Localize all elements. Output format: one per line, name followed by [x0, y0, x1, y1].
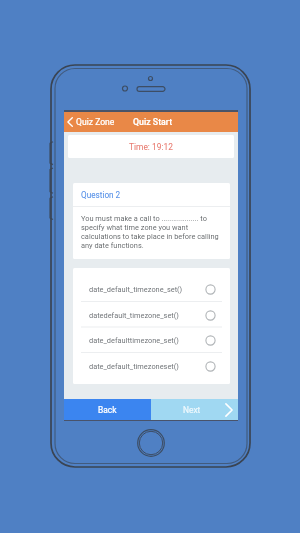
button[interactable]: Time: 19:12 — [68, 135, 234, 158]
staticText: datedefault_timezone_set() — [89, 311, 179, 320]
button[interactable]: datedefault_timezone_set() — [73, 303, 230, 328]
staticText: Quiz Start — [133, 117, 173, 127]
button[interactable]: date_defaulttimezone_set() — [73, 328, 230, 353]
staticText: Next — [183, 405, 201, 415]
button[interactable]: Back — [64, 399, 151, 420]
staticText: Back — [98, 405, 117, 415]
other: Next question — [225, 403, 233, 417]
staticText: Quiz Zone — [76, 117, 115, 127]
staticText: Question 2 — [81, 190, 121, 200]
button[interactable]: Next — [151, 399, 238, 420]
staticText: date_default_timezoneset() — [89, 362, 179, 371]
button[interactable]: date_default_timezone_set() — [73, 277, 230, 302]
staticText: date_default_timezone_set() — [89, 285, 183, 294]
button[interactable]: date_default_timezoneset() — [73, 354, 230, 379]
staticText: Time: 19:12 — [129, 142, 173, 152]
staticText: You must make a call to ................… — [81, 214, 223, 250]
staticText: date_defaulttimezone_set() — [89, 336, 179, 345]
button[interactable]: Quiz Zone — [64, 114, 120, 130]
